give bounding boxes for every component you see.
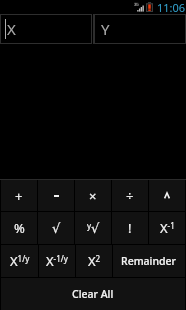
staticText: X1/y (10, 252, 30, 270)
button[interactable]: power (149, 180, 185, 211)
button[interactable]: factorial (112, 212, 148, 244)
button[interactable]: x to the one over y (1, 245, 38, 277)
staticText: Clear All (72, 287, 114, 301)
button[interactable]: x squared (76, 245, 112, 277)
button[interactable]: y-th root (75, 212, 111, 244)
button[interactable]: Y (94, 14, 186, 44)
button[interactable]: x to the minus one over y (39, 245, 75, 277)
button[interactable]: X (0, 14, 92, 44)
button[interactable]: divide (112, 180, 148, 211)
button[interactable]: inverse (149, 212, 185, 244)
staticText: % (14, 219, 25, 237)
staticText: X (7, 19, 16, 39)
staticText: × (89, 187, 97, 205)
button[interactable]: Clear All (1, 278, 185, 310)
staticText: ! (128, 219, 132, 237)
staticText: X2 (88, 252, 101, 270)
button[interactable]: square root (38, 212, 74, 244)
staticText: Remainder (121, 254, 177, 268)
staticText: y√ (87, 220, 100, 236)
button[interactable]: percent (1, 212, 37, 244)
button[interactable]: multiply (75, 180, 111, 211)
staticText: X-1/y (46, 252, 68, 270)
button[interactable]: plus (1, 180, 37, 211)
staticText: ÷ (126, 187, 134, 205)
staticText: X-1 (160, 219, 175, 237)
button[interactable]: Remainder (113, 245, 185, 277)
button[interactable]: minus (38, 180, 74, 211)
staticText: √ (52, 221, 61, 236)
staticText: Y (101, 19, 110, 39)
staticText: + (15, 187, 23, 205)
staticText: 11:06 (157, 0, 186, 14)
